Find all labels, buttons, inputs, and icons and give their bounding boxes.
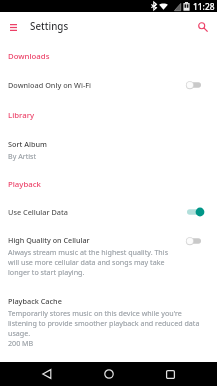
staticText: Temporarily stores music on this device … bbox=[8, 308, 211, 348]
button[interactable]: Download Only on Wi-Fi bbox=[0, 79, 217, 91]
button[interactable]: Sort Album bbox=[0, 139, 217, 161]
button[interactable]: Toggle off bbox=[187, 79, 202, 91]
button[interactable]: Use Cellular Data bbox=[0, 206, 217, 218]
staticText: Always stream music at the highest quali… bbox=[8, 247, 176, 277]
button[interactable]: High Quality on Cellular bbox=[0, 235, 217, 277]
staticText: Settings bbox=[30, 20, 69, 33]
staticText: Sort Album bbox=[8, 139, 48, 149]
staticText: Library bbox=[8, 110, 217, 121]
staticText: Playback Cache bbox=[8, 296, 62, 306]
staticText: Playback bbox=[8, 179, 217, 190]
button[interactable]: Playback Cache bbox=[0, 296, 217, 348]
button[interactable]: Search bbox=[194, 18, 212, 36]
staticText: Downloads bbox=[8, 51, 217, 62]
button[interactable]: Recent apps bbox=[156, 362, 184, 386]
button[interactable]: Home bbox=[95, 362, 123, 386]
staticText: 11:28 bbox=[193, 1, 215, 12]
staticText: Download Only on Wi-Fi bbox=[8, 80, 187, 90]
button[interactable]: Back bbox=[33, 362, 61, 386]
button[interactable]: Toggle off bbox=[187, 235, 202, 247]
staticText: High Quality on Cellular bbox=[8, 235, 90, 245]
staticText: By Artist bbox=[8, 151, 37, 161]
button[interactable]: Toggle on bbox=[187, 206, 202, 218]
button[interactable]: Open navigation menu bbox=[3, 17, 23, 37]
staticText: Use Cellular Data bbox=[8, 207, 187, 217]
